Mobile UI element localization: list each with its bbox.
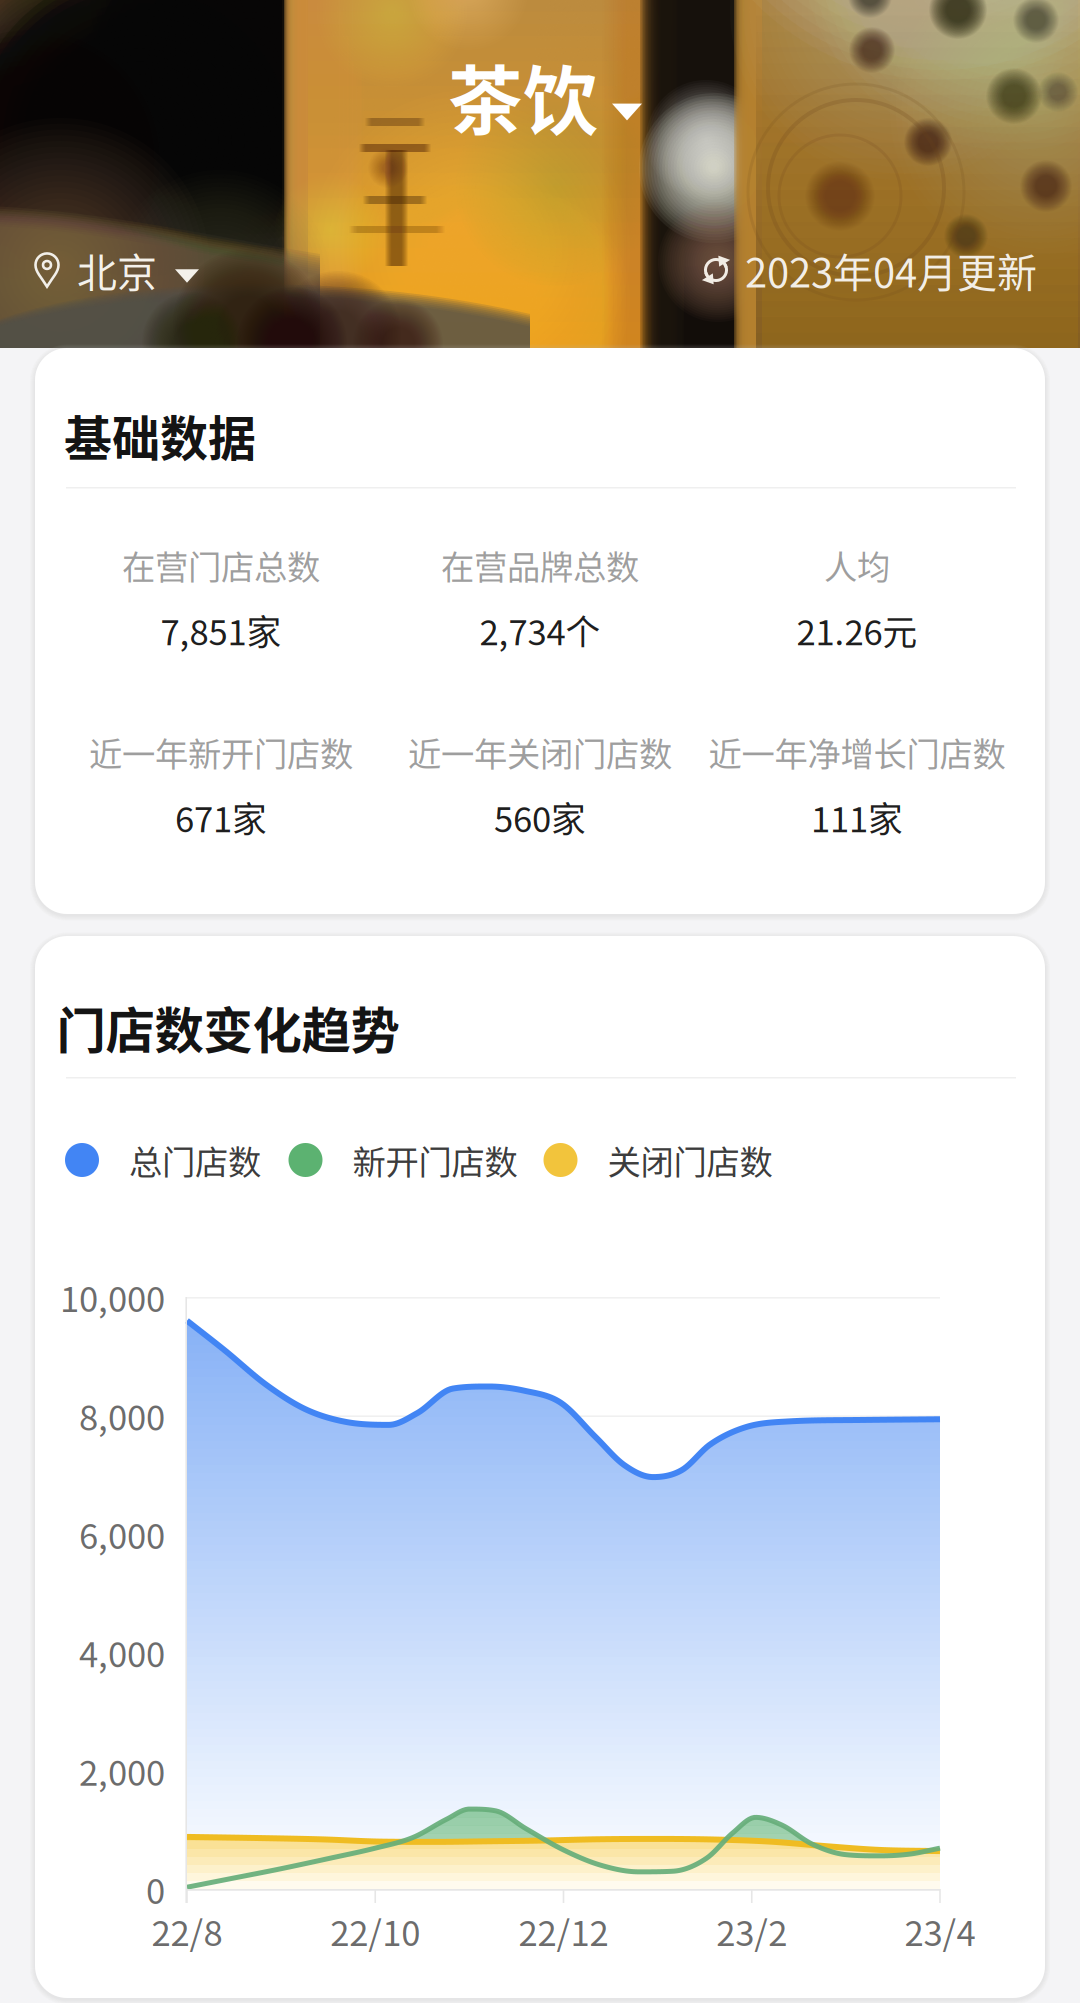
staticText: 近一年关闭门店数 xyxy=(408,728,672,776)
staticText: 10,000 xyxy=(60,1272,165,1322)
staticText: 新开门店数 xyxy=(352,1136,517,1184)
staticText: 关闭门店数 xyxy=(607,1136,772,1184)
staticText: 近一年新开门店数 xyxy=(89,728,353,776)
staticText: 近一年净增长门店数 xyxy=(708,728,1005,776)
button[interactable]: 茶饮 xyxy=(436,34,654,158)
staticText: 茶饮 xyxy=(448,42,598,150)
button[interactable]: 2023年04月更新 xyxy=(691,233,1045,307)
staticText: 8,000 xyxy=(79,1390,165,1440)
staticText: 21.26元 xyxy=(796,605,917,655)
staticText: 560家 xyxy=(494,792,586,842)
staticText: 7,851家 xyxy=(160,605,281,655)
staticText: 23/2 xyxy=(716,1906,787,1956)
staticText: 2023年04月更新 xyxy=(745,241,1037,299)
staticText: 总门店数 xyxy=(129,1136,261,1184)
staticText: 2,734个 xyxy=(479,605,600,655)
staticText: 门店数变化趋势 xyxy=(56,991,399,1063)
staticText: 0 xyxy=(146,1864,165,1914)
staticText: 22/12 xyxy=(518,1906,608,1956)
staticText: 北京 xyxy=(77,241,157,299)
staticText: 6,000 xyxy=(79,1509,165,1559)
staticText: 22/8 xyxy=(151,1906,222,1956)
button[interactable]: 北京 xyxy=(19,233,209,307)
staticText: 22/10 xyxy=(330,1906,420,1956)
staticText: 2,000 xyxy=(79,1745,165,1796)
staticText: 基础数据 xyxy=(64,400,256,470)
staticText: 671家 xyxy=(175,792,267,842)
staticText: 23/4 xyxy=(904,1906,975,1956)
staticText: 4,000 xyxy=(79,1627,165,1677)
staticText: 在营品牌总数 xyxy=(441,541,639,589)
staticText: 在营门店总数 xyxy=(122,541,320,589)
staticText: 111家 xyxy=(811,792,903,842)
staticText: 人均 xyxy=(824,541,890,589)
